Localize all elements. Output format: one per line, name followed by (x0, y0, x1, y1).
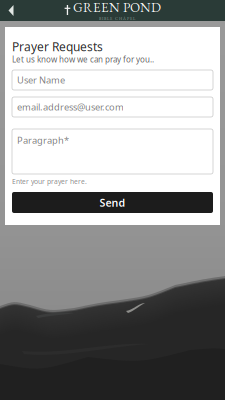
staticText: B I B L E C H A P E L (99, 16, 135, 21)
staticText: User Name (17, 74, 65, 86)
staticText: Paragraph* (17, 134, 69, 146)
staticText: GREEN POND (73, 0, 161, 16)
staticText: Let us know how we can pray for you.. (12, 54, 154, 65)
staticText: Prayer Requests (12, 38, 103, 54)
staticText: Enter your prayer here. (12, 177, 87, 186)
button[interactable]: Send (12, 192, 213, 213)
staticText: email.address@user.com (17, 101, 124, 113)
button[interactable]: Back (2, 0, 22, 21)
staticText: Send (99, 195, 125, 210)
